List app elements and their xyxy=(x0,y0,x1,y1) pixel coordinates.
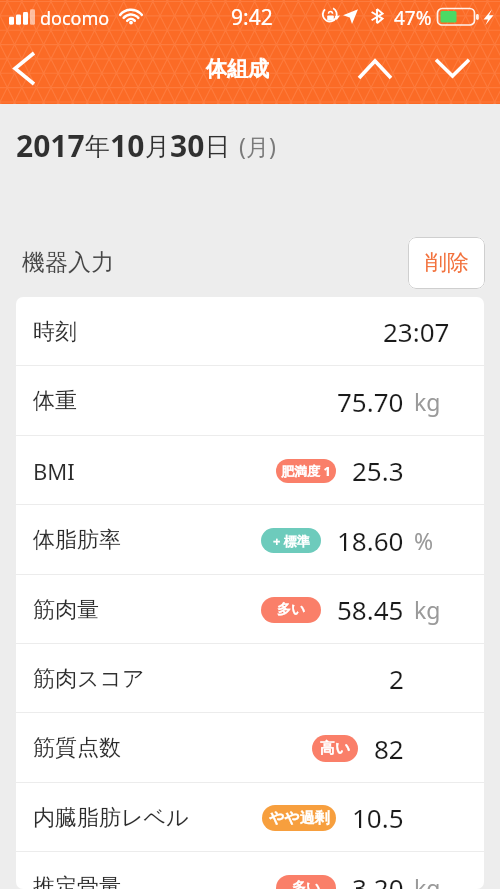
staticText: 内臓脂肪レベル xyxy=(33,804,189,832)
staticText: 10.5 xyxy=(352,800,404,835)
staticText: 多い xyxy=(292,879,321,889)
button[interactable]: Back xyxy=(2,38,48,98)
staticText: 削除 xyxy=(425,249,469,277)
staticText: 47% xyxy=(394,5,432,31)
staticText: 2017 xyxy=(16,125,85,166)
staticText: 2 xyxy=(389,661,404,696)
staticText: 75.70 xyxy=(337,384,404,419)
staticText: BMI xyxy=(33,456,75,486)
button[interactable]: 体脂肪率 xyxy=(16,505,484,575)
staticText: やや過剰 xyxy=(269,809,330,828)
staticText: 体組成 xyxy=(206,56,269,82)
staticText: 18.60 xyxy=(337,523,404,558)
button[interactable]: 内臓脂肪レベル xyxy=(16,783,484,852)
button[interactable]: 推定骨量 xyxy=(16,852,484,889)
staticText: 9:42 xyxy=(231,3,273,32)
staticText: 体重 xyxy=(33,387,77,415)
staticText: 推定骨量 xyxy=(33,873,121,889)
staticText: 58.45 xyxy=(337,592,404,627)
staticText: 筋質点数 xyxy=(33,734,121,762)
staticText: 月 xyxy=(145,131,170,162)
staticText: 23:07 xyxy=(383,314,450,349)
staticText: % xyxy=(414,525,434,556)
staticText: 25.3 xyxy=(352,453,404,488)
staticText: (月) xyxy=(239,130,276,161)
staticText: 日 xyxy=(205,131,230,162)
staticText: 3.20 xyxy=(352,870,404,889)
staticText: + 標準 xyxy=(273,532,310,550)
button[interactable]: BMI xyxy=(16,436,484,505)
button[interactable]: 筋質点数 xyxy=(16,713,484,783)
button[interactable]: 筋肉量 xyxy=(16,575,484,644)
staticText: 82 xyxy=(374,731,404,766)
staticText: 10 xyxy=(110,125,145,166)
staticText: docomo xyxy=(40,6,110,31)
staticText: 30 xyxy=(170,125,205,166)
staticText: 多い xyxy=(277,601,306,619)
staticText: 体脂肪率 xyxy=(33,526,121,554)
staticText: 年 xyxy=(85,131,110,162)
button[interactable]: Previous day xyxy=(350,47,400,89)
staticText: kg xyxy=(414,872,441,889)
staticText: 時刻 xyxy=(33,318,77,346)
staticText: 機器入力 xyxy=(22,248,114,277)
staticText: 肥満度 1 xyxy=(281,462,331,480)
staticText: kg xyxy=(414,594,441,625)
button[interactable]: 時刻 xyxy=(16,297,484,366)
button[interactable]: 筋肉スコア xyxy=(16,644,484,713)
button[interactable]: 体重 xyxy=(16,366,484,436)
staticText: 筋肉スコア xyxy=(33,665,145,693)
staticText: 筋肉量 xyxy=(33,596,99,624)
button[interactable]: Next day xyxy=(427,45,477,87)
staticText: 高い xyxy=(320,739,351,758)
button[interactable]: 削除 xyxy=(408,237,485,289)
staticText: kg xyxy=(414,386,441,417)
